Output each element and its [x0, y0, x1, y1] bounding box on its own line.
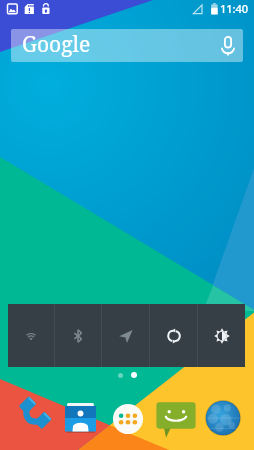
button[interactable]: Brightness: [198, 304, 245, 367]
button[interactable]: Wi-Fi: [8, 304, 54, 367]
staticText: 11:40: [220, 1, 249, 16]
button[interactable]: Location: [102, 304, 149, 367]
button[interactable]: Phone: [14, 399, 48, 435]
button[interactable]: Voice search: [213, 29, 243, 62]
button[interactable]: Browser: [205, 400, 241, 436]
staticText: Google: [22, 30, 91, 59]
button[interactable]: Google: [11, 29, 243, 62]
button[interactable]: All apps: [112, 403, 144, 435]
button[interactable]: Contacts: [65, 403, 96, 433]
button[interactable]: Messaging: [156, 402, 196, 438]
button[interactable]: Sync: [150, 304, 197, 367]
button[interactable]: Bluetooth: [55, 304, 101, 367]
